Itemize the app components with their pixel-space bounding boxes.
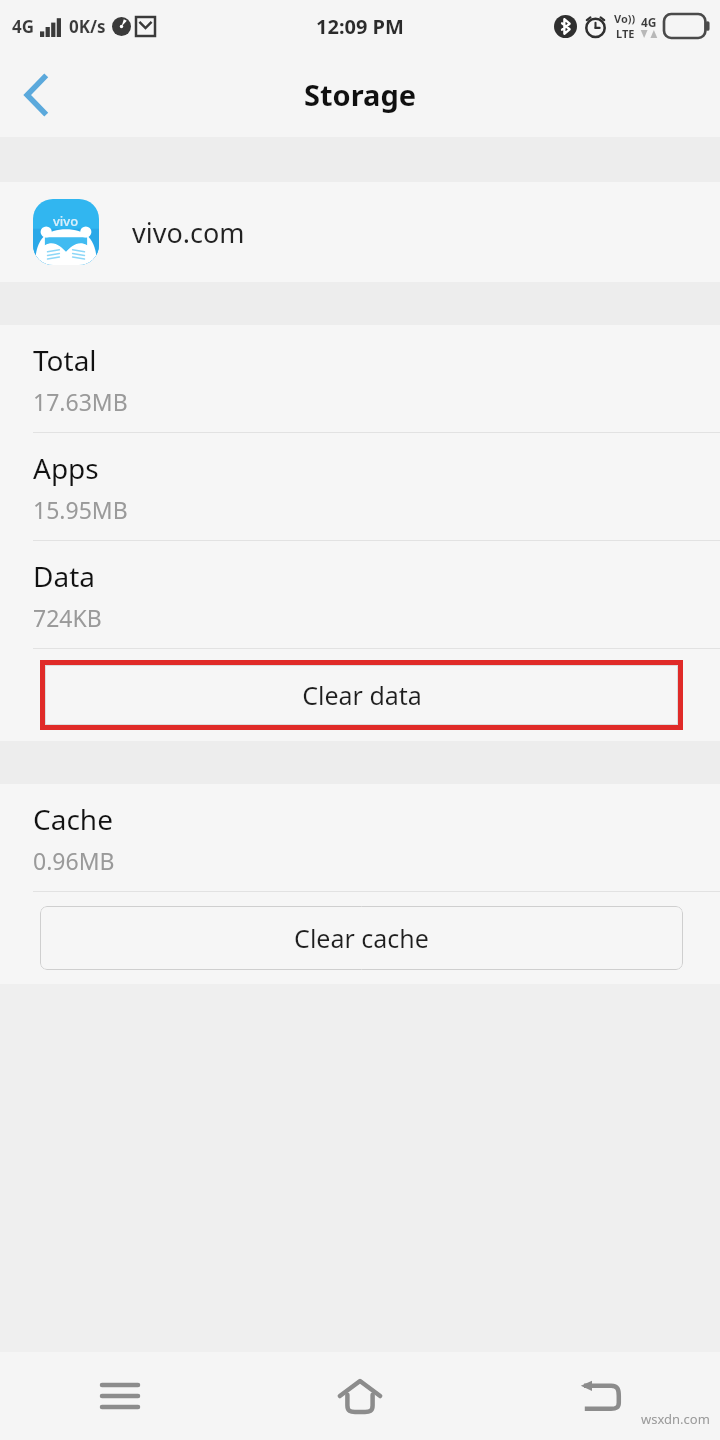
staticText: vivo.com: [132, 214, 245, 251]
staticText: 0K/s: [69, 15, 106, 38]
button[interactable]: Home: [240, 1352, 480, 1440]
staticText: Clear data: [302, 678, 422, 712]
staticText: Total: [33, 341, 97, 379]
button[interactable]: Apps: [0, 433, 720, 540]
button[interactable]: Cache: [0, 784, 720, 891]
staticText: 4G: [641, 14, 657, 30]
staticText: 724KB: [33, 602, 102, 633]
staticText: vivo: [53, 212, 79, 230]
button[interactable]: Back: [0, 59, 72, 131]
button[interactable]: Data: [0, 541, 720, 648]
staticText: Vo)): [614, 11, 636, 26]
staticText: Data: [33, 557, 95, 595]
button[interactable]: Clear data: [45, 665, 678, 725]
button[interactable]: Recent apps: [0, 1352, 240, 1440]
button[interactable]: Back: [480, 1352, 720, 1440]
button[interactable]: vivo: [0, 182, 720, 282]
button[interactable]: Clear cache: [40, 906, 683, 970]
staticText: 17.63MB: [33, 386, 128, 417]
staticText: Clear cache: [294, 921, 429, 955]
staticText: wsxdn.com: [641, 1410, 710, 1428]
staticText: Storage: [304, 75, 417, 114]
staticText: 12:09 PM: [316, 13, 404, 40]
staticText: 15.95MB: [33, 494, 128, 525]
staticText: Cache: [33, 800, 113, 838]
staticText: LTE: [616, 26, 635, 41]
staticText: Apps: [33, 449, 99, 487]
staticText: 0.96MB: [33, 845, 115, 876]
button[interactable]: Total: [0, 325, 720, 432]
staticText: 4G: [12, 15, 35, 38]
